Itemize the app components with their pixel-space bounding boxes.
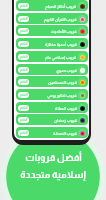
staticText: انضم [20, 29, 28, 33]
staticText: قروب دعوي [56, 68, 77, 72]
button[interactable]: انضم [16, 51, 88, 62]
staticText: انضم [20, 17, 28, 21]
button[interactable]: انضم [18, 41, 29, 47]
button[interactable]: انضم [18, 16, 29, 22]
staticText: انضم [20, 93, 28, 97]
staticText: قروب رمضان [54, 118, 77, 122]
staticText: أفضل قروبات [25, 152, 82, 163]
other: Group avatar [78, 91, 86, 99]
button[interactable]: انضم [18, 79, 29, 85]
staticText: قروب الصدقة [53, 131, 77, 135]
button[interactable]: انضم [16, 13, 88, 24]
staticText: قروب الصلاة [55, 106, 77, 110]
button[interactable]: انضم [18, 3, 29, 9]
other: Group avatar [78, 40, 86, 48]
button[interactable]: انضم [16, 76, 88, 87]
staticText: قروب الأحاديث [51, 29, 77, 33]
button[interactable]: انضم [16, 89, 88, 100]
other: Group avatar [78, 53, 86, 61]
other: Group avatar [78, 66, 86, 74]
button[interactable]: انضم [18, 117, 29, 123]
staticText: قروب أذكار الصباح [45, 4, 77, 8]
staticText: انضم [20, 106, 28, 110]
button[interactable]: انضم [18, 105, 29, 111]
staticText: انضم [20, 80, 28, 84]
staticText: قروب أدعية مختارة [45, 42, 77, 46]
other: Group avatar [78, 116, 86, 124]
staticText: انضم [20, 4, 28, 8]
button[interactable]: انضم [18, 28, 29, 34]
staticText: انضم [20, 68, 28, 72]
button[interactable]: انضم [16, 0, 88, 11]
staticText: قروب القرآن الكريم [44, 17, 77, 21]
staticText: قروب تذكير يومي [47, 93, 77, 97]
other: Group avatar [78, 27, 86, 35]
other: Group avatar [78, 2, 86, 10]
staticText: قروب إسلامي عام [45, 55, 77, 59]
other: Group avatar [78, 129, 86, 137]
button[interactable]: انضم [16, 114, 88, 125]
other: Group avatar [78, 104, 86, 112]
other: Group avatar [78, 15, 86, 23]
button[interactable]: انضم [16, 102, 88, 113]
button[interactable]: انضم [18, 54, 29, 60]
button[interactable]: انضم [16, 25, 88, 36]
button[interactable]: انضم [18, 67, 29, 73]
staticText: انضم [20, 42, 28, 46]
staticText: انضم [20, 55, 28, 59]
button[interactable]: انضم [16, 38, 88, 49]
button[interactable]: انضم [18, 130, 29, 136]
staticText: قروب المسلمين [48, 80, 77, 84]
button[interactable]: انضم [16, 127, 88, 138]
staticText: إسلامية متجددة [20, 169, 86, 180]
staticText: انضم [20, 118, 28, 122]
button[interactable]: انضم [16, 64, 88, 75]
button[interactable]: انضم [18, 92, 29, 98]
other: Group avatar [78, 78, 86, 86]
staticText: انضم [20, 131, 28, 135]
